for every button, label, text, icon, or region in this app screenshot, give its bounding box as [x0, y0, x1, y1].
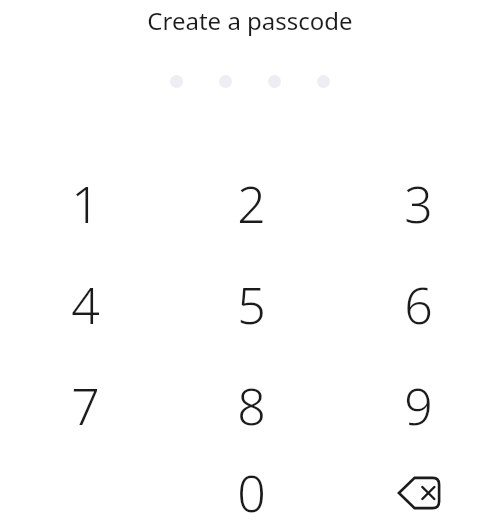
button[interactable]: 5	[168, 254, 335, 355]
button[interactable]: 6	[335, 254, 500, 355]
button[interactable]: 9	[335, 355, 500, 456]
staticText: Create a passcode	[147, 4, 353, 37]
button[interactable]: Backspace	[335, 456, 500, 529]
staticText: 5	[237, 271, 266, 339]
staticText: 4	[71, 271, 100, 339]
staticText: 2	[237, 170, 266, 238]
staticText: 1	[71, 170, 100, 238]
button[interactable]: 4	[2, 254, 168, 355]
staticText: 7	[71, 372, 100, 440]
button[interactable]: 0	[168, 456, 335, 529]
staticText: 9	[404, 372, 433, 440]
button[interactable]: 2	[168, 153, 335, 254]
button[interactable]: 7	[2, 355, 168, 456]
button[interactable]: 3	[335, 153, 500, 254]
button[interactable]: 1	[2, 153, 168, 254]
staticText: 0	[237, 459, 266, 527]
staticText: 3	[404, 170, 433, 238]
button[interactable]: 8	[168, 355, 335, 456]
staticText: 6	[404, 271, 433, 339]
staticText: 8	[237, 372, 266, 440]
